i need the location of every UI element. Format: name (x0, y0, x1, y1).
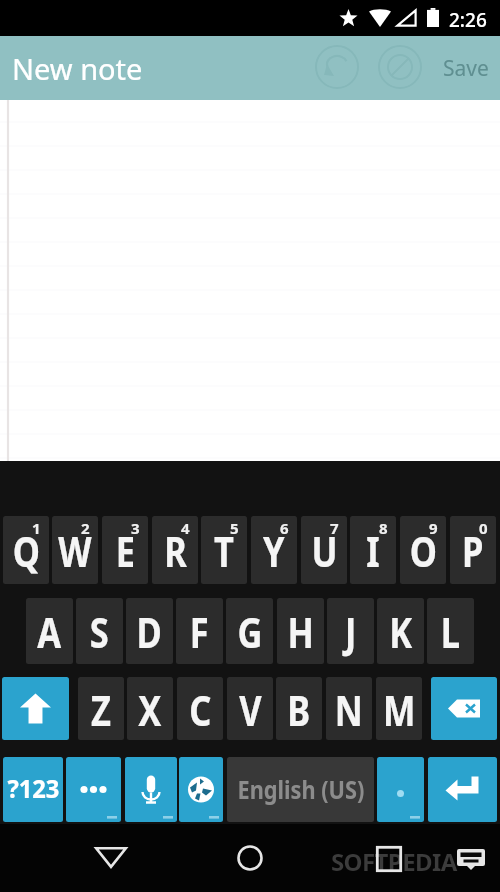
button[interactable]: D (126, 598, 173, 664)
button[interactable]: T (201, 516, 247, 584)
staticText: D (136, 604, 162, 660)
button[interactable]: W (52, 516, 98, 584)
staticText: A (37, 604, 62, 660)
button[interactable]: Back (86, 832, 136, 882)
staticText: Save (443, 54, 489, 83)
button[interactable]: Change language (179, 757, 223, 822)
staticText: R (164, 523, 187, 579)
staticText: J (345, 604, 357, 660)
button[interactable]: O (400, 516, 446, 584)
button[interactable]: M (376, 677, 422, 740)
button[interactable]: G (226, 598, 273, 664)
staticText: N (335, 682, 363, 738)
staticText: English (US) (237, 772, 364, 806)
button[interactable]: Enter (428, 757, 497, 822)
button[interactable]: Save (443, 54, 489, 83)
staticText: M (383, 682, 416, 738)
button[interactable]: L (427, 598, 474, 664)
button[interactable]: Home (225, 833, 275, 883)
staticText: 2 (81, 518, 90, 538)
button[interactable]: H (277, 598, 324, 664)
staticText: T (214, 523, 234, 579)
staticText: Y (263, 523, 285, 579)
button[interactable]: C (177, 677, 223, 740)
staticText: 2:26 (449, 7, 487, 33)
button[interactable]: K (377, 598, 424, 664)
staticText: B (287, 682, 311, 738)
button[interactable]: Shift (2, 677, 69, 740)
staticText: O (410, 523, 437, 579)
staticText: U (311, 523, 337, 579)
staticText: 9 (429, 518, 438, 538)
staticText: V (239, 682, 262, 738)
button[interactable]: R (152, 516, 198, 584)
button[interactable]: More (66, 757, 121, 822)
button[interactable]: Q (3, 516, 49, 584)
button[interactable]: A (26, 598, 73, 664)
staticText: 0 (479, 518, 488, 538)
staticText: Z (91, 682, 111, 738)
button[interactable]: I (350, 516, 396, 584)
staticText: L (441, 604, 460, 660)
button[interactable]: ?123 (3, 757, 63, 822)
staticText: H (288, 604, 314, 660)
staticText: 1 (32, 518, 41, 538)
staticText: C (189, 682, 212, 738)
button[interactable]: V (227, 677, 273, 740)
staticText: F (190, 604, 209, 660)
button[interactable]: Hide keyboard (449, 837, 493, 881)
button[interactable]: X (127, 677, 173, 740)
staticText: SOFTPEDIA (331, 845, 457, 878)
button[interactable]: N (326, 677, 372, 740)
staticText: 5 (230, 518, 239, 538)
staticText: 3 (131, 518, 140, 538)
staticText: 8 (379, 518, 388, 538)
button[interactable]: Voice input (125, 757, 177, 822)
button[interactable]: F (176, 598, 223, 664)
staticText: I (366, 523, 380, 579)
staticText: W (58, 523, 92, 579)
staticText: 7 (330, 518, 339, 538)
staticText: ?123 (7, 771, 60, 805)
button[interactable]: Redo (376, 43, 424, 91)
button[interactable]: U (301, 516, 347, 584)
button[interactable]: Z (78, 677, 124, 740)
button[interactable]: Backspace (431, 677, 497, 740)
button[interactable]: P (450, 516, 496, 584)
staticText: 4 (181, 518, 190, 538)
staticText: Q (13, 523, 40, 579)
staticText: S (90, 604, 109, 660)
button[interactable]: Y (251, 516, 297, 584)
staticText: 6 (280, 518, 289, 538)
button[interactable]: Period (377, 757, 424, 822)
button[interactable]: B (276, 677, 322, 740)
staticText: E (116, 523, 135, 579)
staticText: K (389, 604, 413, 660)
button[interactable]: Undo (313, 43, 361, 91)
button[interactable]: S (76, 598, 123, 664)
button[interactable]: E (102, 516, 148, 584)
staticText: P (462, 523, 484, 579)
staticText: X (138, 682, 162, 738)
button[interactable]: J (327, 598, 374, 664)
button[interactable]: English (US) (227, 757, 374, 822)
button[interactable]: Recents (364, 834, 414, 884)
staticText: G (237, 604, 263, 660)
staticText: New note (12, 49, 143, 88)
